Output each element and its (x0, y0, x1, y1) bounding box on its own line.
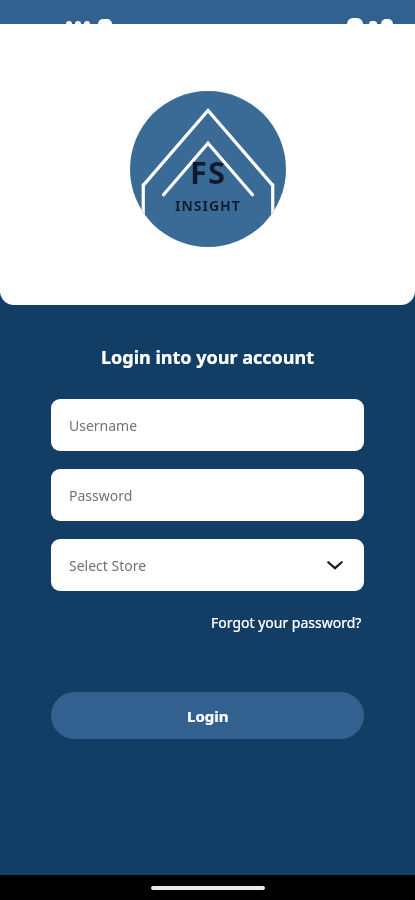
button[interactable]: Username (51, 399, 364, 451)
staticText: Login into your account (0, 345, 415, 370)
button[interactable]: Login (51, 692, 364, 739)
staticText: Password (69, 486, 133, 505)
staticText: Username (69, 416, 138, 435)
staticText: Login (187, 706, 229, 726)
button[interactable]: Password (51, 469, 364, 521)
staticText: Forgot your password? (211, 613, 362, 632)
button[interactable]: Select Store (51, 539, 364, 591)
staticText: FS (190, 151, 227, 193)
staticText: INSIGHT (175, 196, 241, 215)
staticText: Select Store (69, 556, 324, 575)
button[interactable]: Forgot your password? (209, 609, 364, 636)
other: Open store list (324, 554, 346, 576)
